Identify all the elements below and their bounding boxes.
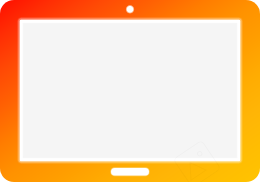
button[interactable]: Tablet display	[20, 20, 241, 162]
button[interactable]: Front camera	[127, 6, 134, 13]
button[interactable]: Home button	[111, 168, 150, 177]
